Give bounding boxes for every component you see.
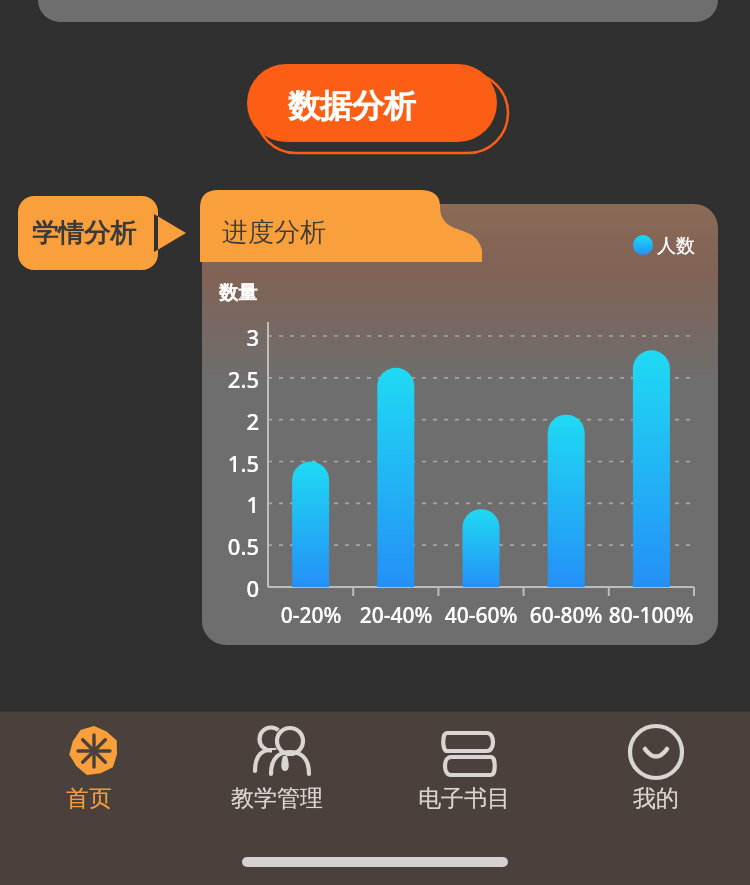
button[interactable]: 我的 [572,718,740,818]
staticText: 80-100% [591,601,711,631]
staticText: 首页 [66,784,112,813]
staticText: 1.5 [189,448,259,478]
staticText: 3 [189,322,259,352]
staticText: 电子书目 [418,784,510,813]
staticText: 人数 [657,234,695,258]
button[interactable]: 首页 [10,718,178,818]
staticText: 20-40% [336,601,456,631]
button[interactable]: 数据分析 [247,64,499,144]
staticText: 我的 [633,784,679,813]
staticText: 0.5 [189,531,259,561]
staticText: 数据分析 [288,86,416,126]
staticText: 1 [189,489,259,519]
staticText: 0-20% [251,601,371,631]
staticText: 60-80% [506,601,626,631]
staticText: 40-60% [421,601,541,631]
staticText: 0 [189,573,259,603]
button[interactable]: 进度分析 [200,190,482,262]
button[interactable]: 学情分析 [18,196,188,270]
staticText: 教学管理 [231,784,323,813]
staticText: 2.5 [189,364,259,394]
staticText: 数量 [219,281,257,305]
staticText: 进度分析 [222,216,326,249]
staticText: 2 [189,406,259,436]
staticText: 学情分析 [32,217,136,250]
button[interactable]: 电子书目 [385,718,553,818]
button[interactable]: 教学管理 [198,718,366,818]
